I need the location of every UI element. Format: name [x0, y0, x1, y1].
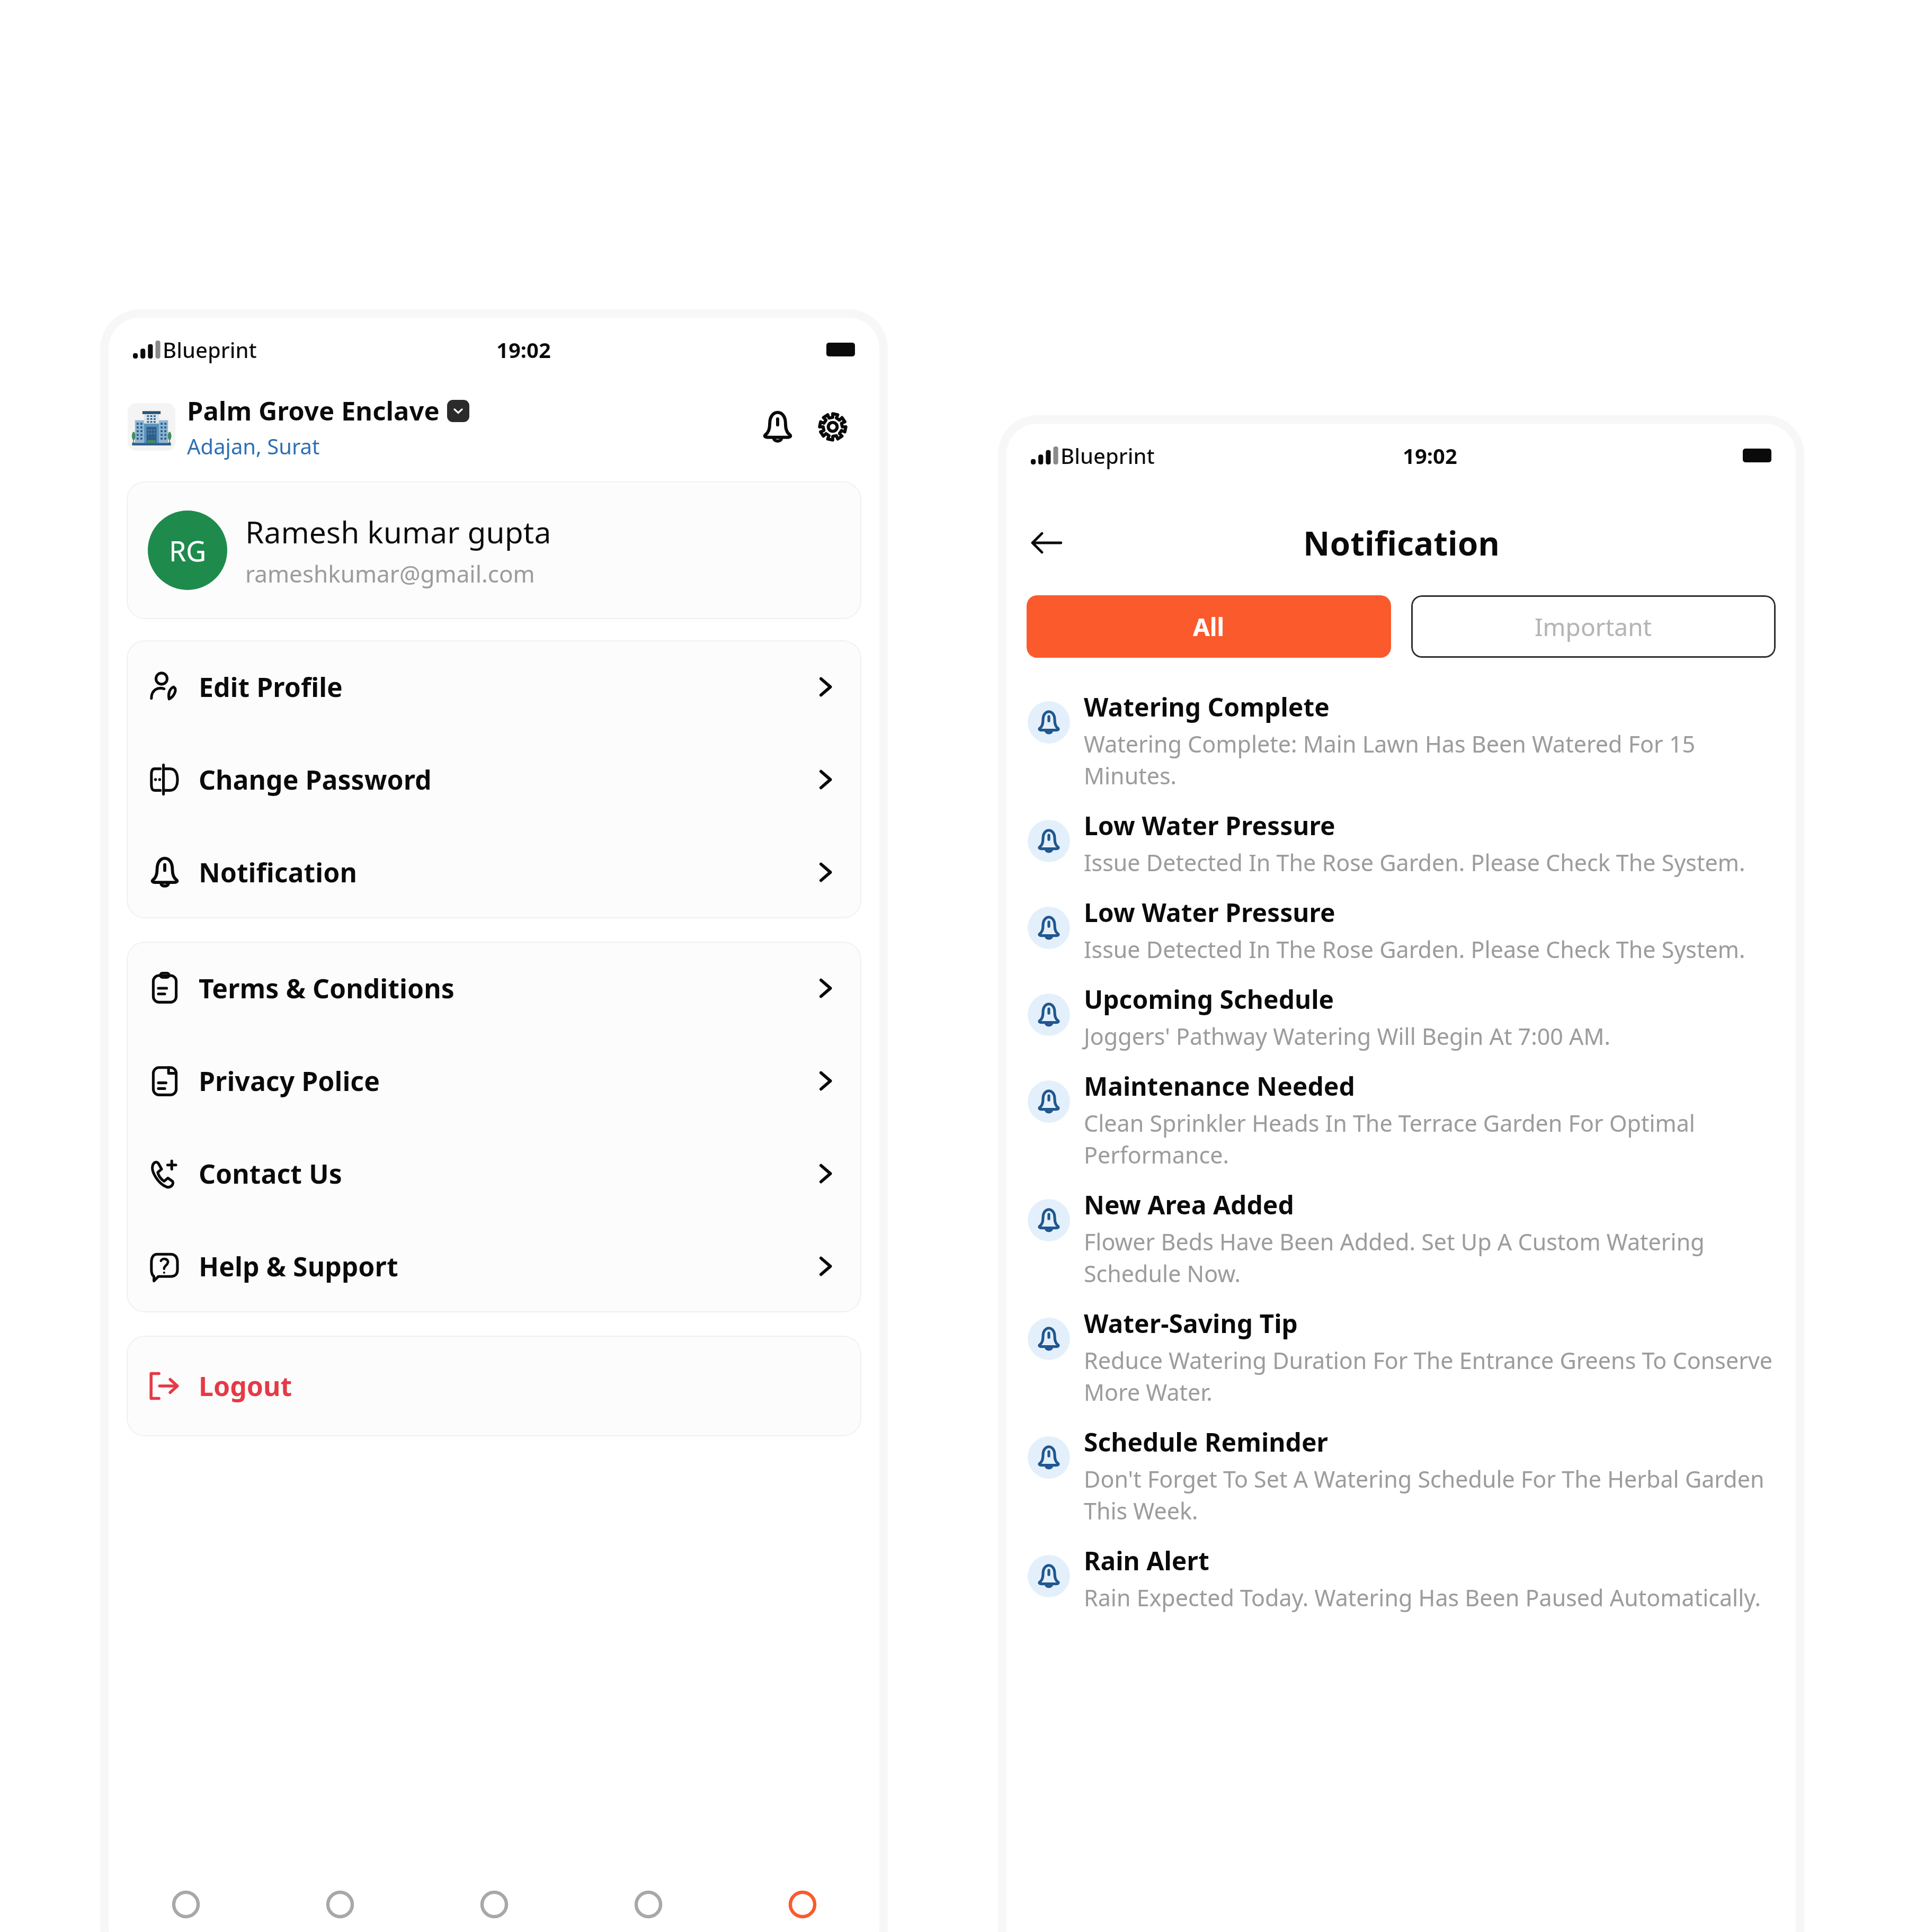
button[interactable]: Maintenance Needed [1006, 1060, 1796, 1179]
button[interactable]: Important [1411, 595, 1776, 658]
button[interactable]: Palm Grove Enclave [128, 393, 752, 460]
button[interactable]: Tab 4 [571, 1880, 725, 1932]
staticText: Water-Saving Tip [1084, 1306, 1298, 1340]
button[interactable]: Edit Profile [127, 640, 861, 733]
staticText: All [1193, 610, 1225, 643]
staticText: Flower Beds Have Been Added. Set Up A Cu… [1084, 1226, 1775, 1289]
staticText: rameshkumar@gmail.com [245, 558, 535, 589]
button[interactable]: Upcoming Schedule [1006, 973, 1796, 1060]
staticText: Issue Detected In The Rose Garden. Pleas… [1084, 934, 1745, 965]
staticText: Reduce Watering Duration For The Entranc… [1084, 1345, 1775, 1408]
button[interactable]: New Area Added [1006, 1179, 1796, 1298]
staticText: Terms & Conditions [199, 970, 455, 1006]
staticText: Ramesh kumar gupta [245, 511, 551, 552]
staticText: Privacy Police [199, 1063, 380, 1099]
button[interactable]: Tab 1 [109, 1880, 263, 1932]
button[interactable]: Rain Alert [1006, 1535, 1796, 1622]
button[interactable]: Notification [127, 826, 861, 918]
staticText: Blueprint [163, 335, 257, 364]
button[interactable]: Logout [148, 1336, 861, 1436]
button[interactable]: Tab 3 [417, 1880, 571, 1932]
staticText: Contact Us [199, 1156, 342, 1192]
staticText: New Area Added [1084, 1187, 1294, 1222]
staticText: Notification [1303, 521, 1500, 565]
staticText: Watering Complete [1084, 690, 1330, 724]
button[interactable]: Help & Support [127, 1220, 861, 1312]
staticText: Clean Sprinkler Heads In The Terrace Gar… [1084, 1107, 1775, 1170]
staticText: Watering Complete: Main Lawn Has Been Wa… [1084, 728, 1775, 791]
staticText: Upcoming Schedule [1084, 982, 1334, 1016]
button[interactable]: Tab 2 [263, 1880, 417, 1932]
staticText: Important [1535, 610, 1652, 643]
staticText: Blueprint [1061, 441, 1155, 470]
button[interactable]: Settings [807, 401, 858, 452]
button[interactable]: Terms & Conditions [127, 942, 861, 1034]
staticText: Palm Grove Enclave [187, 393, 440, 428]
button[interactable]: Privacy Police [127, 1034, 861, 1127]
staticText: 19:02 [496, 335, 551, 364]
staticText: Joggers' Pathway Watering Will Begin At … [1084, 1021, 1611, 1052]
button[interactable]: Schedule Reminder [1006, 1416, 1796, 1535]
staticText: 19:02 [1403, 441, 1457, 470]
button[interactable]: Low Water Pressure [1006, 800, 1796, 887]
staticText: Maintenance Needed [1084, 1069, 1355, 1103]
staticText: Logout [199, 1368, 292, 1404]
staticText: Rain Alert [1084, 1543, 1209, 1578]
button[interactable]: Change Password [127, 733, 861, 826]
staticText: Low Water Pressure [1084, 808, 1335, 843]
staticText: Low Water Pressure [1084, 895, 1335, 929]
staticText: RG [169, 532, 207, 569]
button[interactable]: Notifications [752, 401, 803, 452]
button[interactable]: Watering Complete [1006, 681, 1796, 800]
staticText: Notification [199, 854, 357, 890]
button[interactable]: Contact Us [127, 1127, 861, 1220]
staticText: Change Password [199, 762, 432, 798]
button[interactable]: Back [1021, 517, 1072, 568]
staticText: Adajan, Surat [187, 432, 320, 460]
button[interactable]: Water-Saving Tip [1006, 1298, 1796, 1416]
button[interactable]: RG [148, 481, 861, 619]
staticText: Schedule Reminder [1084, 1425, 1328, 1459]
staticText: Edit Profile [199, 669, 343, 705]
button[interactable]: Tab 5 [725, 1880, 879, 1932]
button[interactable]: All [1027, 595, 1391, 658]
staticText: Issue Detected In The Rose Garden. Pleas… [1084, 847, 1745, 878]
button[interactable]: Low Water Pressure [1006, 887, 1796, 973]
staticText: Don't Forget To Set A Watering Schedule … [1084, 1463, 1775, 1526]
staticText: Rain Expected Today. Watering Has Been P… [1084, 1582, 1761, 1613]
staticText: Help & Support [199, 1248, 398, 1284]
